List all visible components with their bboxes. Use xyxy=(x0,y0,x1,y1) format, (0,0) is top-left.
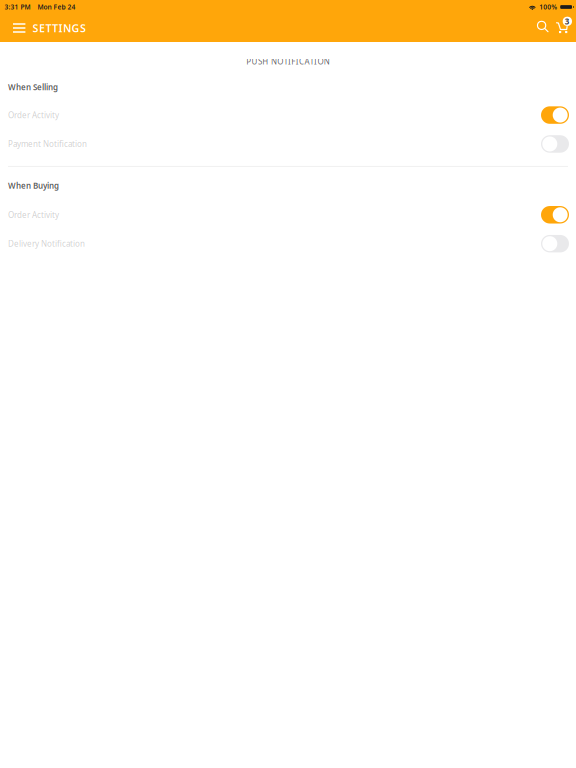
staticText: 3 xyxy=(565,16,570,27)
button[interactable]: Order Activity xyxy=(0,200,576,229)
staticText: When Buying xyxy=(8,180,59,191)
staticText: PUSH NOTIFICATION xyxy=(246,56,330,67)
staticText: When Selling xyxy=(8,82,58,92)
button[interactable]: Cart, 3 items xyxy=(556,14,576,42)
staticText: SETTINGS xyxy=(32,21,86,35)
button[interactable]: Payment Notification xyxy=(0,129,576,158)
staticText: Mon Feb 24 xyxy=(37,3,75,11)
button[interactable]: Search xyxy=(529,14,556,42)
button[interactable]: Delivery Notification xyxy=(0,229,576,258)
staticText: Payment Notification xyxy=(8,139,87,149)
staticText: Delivery Notification xyxy=(8,238,85,249)
staticText: Order Activity xyxy=(8,110,59,120)
staticText: Order Activity xyxy=(8,209,59,220)
button[interactable]: Menu xyxy=(0,14,32,42)
button[interactable]: Order Activity xyxy=(0,101,576,129)
staticText: 3:31 PM xyxy=(4,3,30,11)
staticText: 100% xyxy=(539,3,557,11)
